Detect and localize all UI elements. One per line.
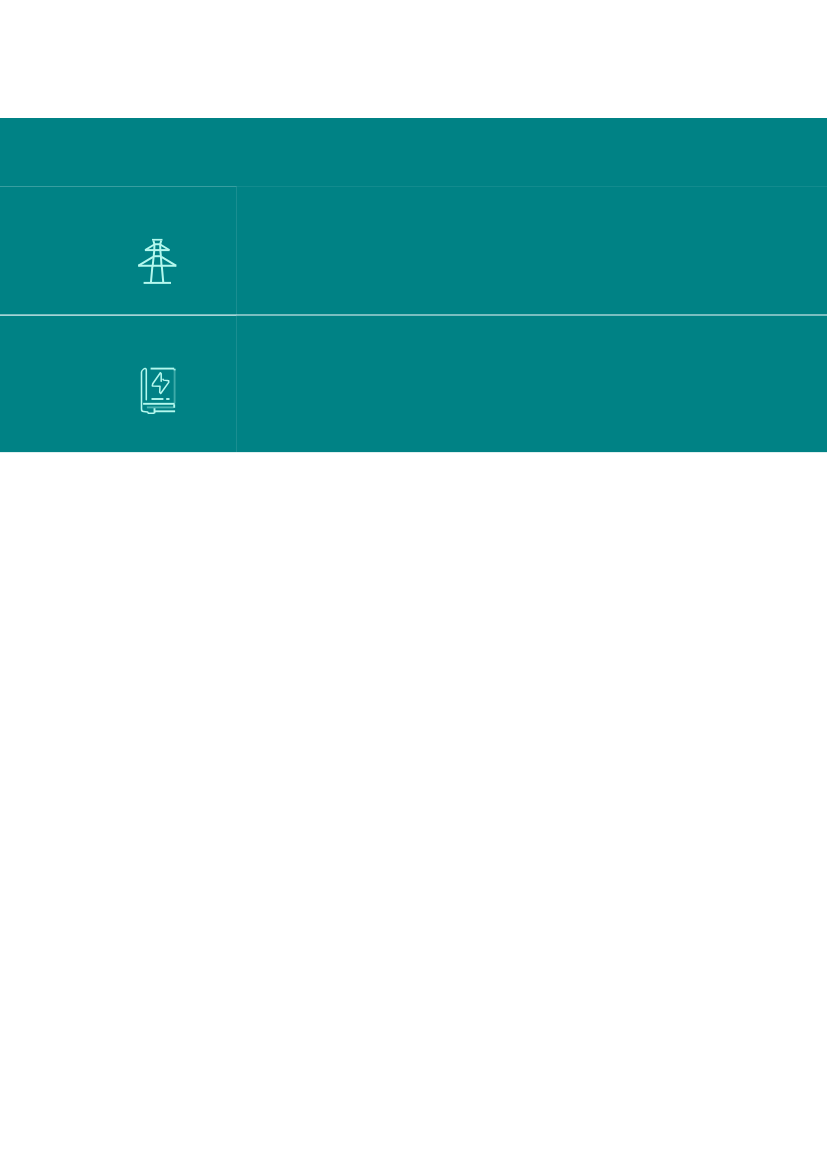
other: Energy guide xyxy=(138,364,180,418)
button[interactable]: Transmission network xyxy=(0,186,827,315)
button[interactable]: Energy guide xyxy=(0,315,827,452)
other: Transmission network xyxy=(136,236,180,288)
